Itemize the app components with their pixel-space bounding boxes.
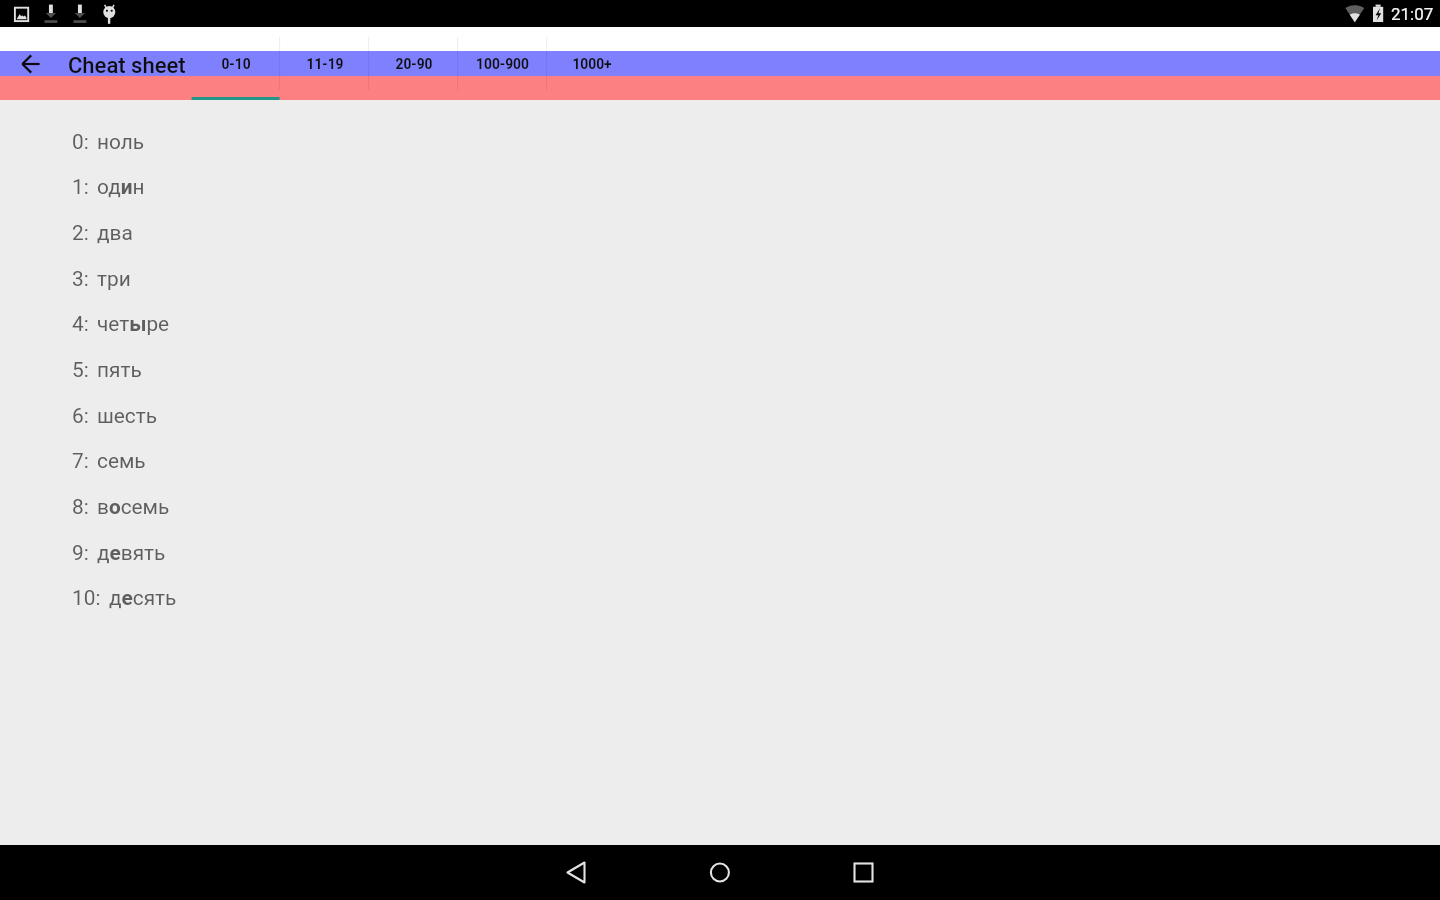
- staticText: 0-10: [221, 56, 251, 72]
- button[interactable]: 10:: [0, 586, 1440, 632]
- staticText: 9:: [72, 541, 89, 565]
- button[interactable]: 1000+: [547, 51, 636, 76]
- button[interactable]: 1:: [0, 175, 1440, 221]
- staticText: два: [97, 221, 133, 245]
- staticText: 4:: [72, 312, 89, 336]
- staticText: девять: [97, 541, 166, 565]
- staticText: восемь: [97, 495, 170, 519]
- staticText: 20-90: [395, 56, 433, 72]
- staticText: Cheat sheet: [68, 53, 186, 79]
- staticText: 11-19: [306, 56, 344, 72]
- button[interactable]: 7:: [0, 449, 1440, 495]
- button[interactable]: 0:: [0, 130, 1440, 176]
- staticText: 6:: [72, 404, 89, 428]
- staticText: 1:: [72, 175, 89, 199]
- button[interactable]: 4:: [0, 312, 1440, 358]
- staticText: семь: [97, 449, 146, 473]
- button[interactable]: Back: [13, 51, 49, 77]
- button[interactable]: 8:: [0, 495, 1440, 541]
- staticText: 8:: [72, 495, 89, 519]
- staticText: 21:07: [1391, 4, 1434, 24]
- button[interactable]: 9:: [0, 541, 1440, 587]
- staticText: три: [97, 267, 131, 291]
- button[interactable]: 6:: [0, 404, 1440, 450]
- button[interactable]: 11-19: [280, 51, 369, 76]
- button[interactable]: 3:: [0, 267, 1440, 313]
- staticText: 100-900: [476, 56, 529, 72]
- button[interactable]: 2:: [0, 221, 1440, 267]
- staticText: четыре: [97, 312, 170, 336]
- button[interactable]: 5:: [0, 358, 1440, 404]
- button[interactable]: Home: [692, 845, 748, 900]
- button[interactable]: 100-900: [458, 51, 547, 76]
- staticText: ноль: [97, 130, 145, 154]
- staticText: 1000+: [572, 56, 612, 72]
- staticText: 2:: [72, 221, 89, 245]
- staticText: 5:: [72, 358, 89, 382]
- staticText: один: [97, 175, 145, 199]
- button[interactable]: 0-10: [191, 51, 280, 76]
- button[interactable]: 20-90: [369, 51, 458, 76]
- staticText: десять: [109, 586, 177, 610]
- button[interactable]: Recents: [835, 845, 891, 900]
- staticText: 3:: [72, 267, 89, 291]
- staticText: 0:: [72, 130, 89, 154]
- button[interactable]: Back: [548, 845, 604, 900]
- staticText: шесть: [97, 404, 158, 428]
- staticText: пять: [97, 358, 142, 382]
- staticText: 7:: [72, 449, 89, 473]
- staticText: 10:: [72, 586, 101, 610]
